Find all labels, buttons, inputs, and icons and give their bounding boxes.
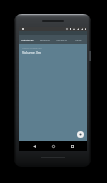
button[interactable]: REMOTE xyxy=(36,35,53,44)
staticText: HELP xyxy=(75,38,82,41)
staticText: YOUR SUMMARY xyxy=(22,46,42,49)
button[interactable]: Recents xyxy=(68,142,76,150)
staticText: Volume 3m xyxy=(22,50,42,55)
button[interactable]: ACTIONS xyxy=(53,35,70,44)
button[interactable]: HELP xyxy=(70,35,87,44)
button[interactable]: SUMMARY xyxy=(19,35,36,44)
staticText: REMOTE xyxy=(40,38,50,41)
button[interactable]: Back xyxy=(30,142,38,150)
staticText: ACTIONS xyxy=(56,38,67,41)
staticText: SUMMARY xyxy=(21,38,34,41)
button[interactable]: Home xyxy=(49,142,57,150)
button[interactable]: Add xyxy=(77,131,84,138)
